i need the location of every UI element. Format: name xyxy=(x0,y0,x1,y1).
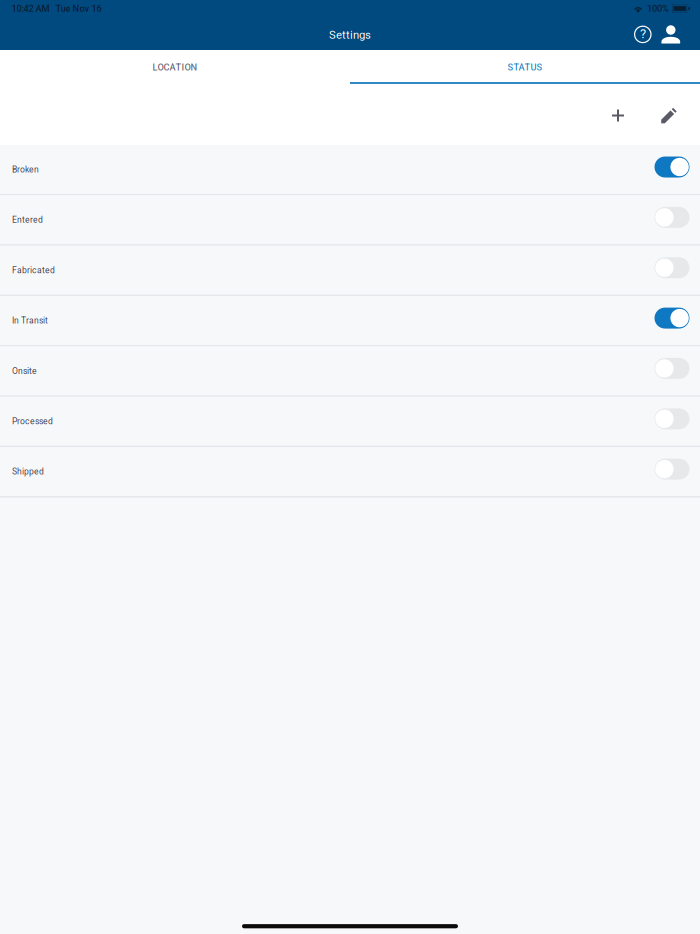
staticText: Broken xyxy=(12,164,39,175)
staticText: ? xyxy=(640,26,646,41)
staticText: LOCATION xyxy=(152,62,197,73)
staticText: Processed xyxy=(12,416,53,426)
staticText: Settings xyxy=(329,28,371,42)
button[interactable]: Broken xyxy=(0,145,700,195)
staticText: In Transit xyxy=(12,315,48,326)
button[interactable]: Account xyxy=(657,19,685,49)
button[interactable]: Entered xyxy=(0,195,700,246)
staticText: Entered xyxy=(12,215,43,225)
button[interactable]: In Transit xyxy=(0,296,700,346)
button[interactable]: Onsite xyxy=(0,346,700,397)
button[interactable]: Add xyxy=(603,100,633,130)
button[interactable]: Edit xyxy=(654,100,684,130)
staticText: Fabricated xyxy=(12,265,55,275)
button[interactable]: Shipped xyxy=(0,447,700,498)
staticText: Shipped xyxy=(12,467,44,477)
staticText: 100% xyxy=(647,3,669,14)
button[interactable]: LOCATION xyxy=(0,50,350,84)
staticText: 10:42 AM Tue Nov 16 xyxy=(12,3,102,14)
staticText: Onsite xyxy=(12,366,37,376)
button[interactable]: Processed xyxy=(0,397,700,447)
button[interactable]: Help xyxy=(629,19,657,49)
button[interactable]: STATUS xyxy=(350,50,700,84)
staticText: STATUS xyxy=(507,62,542,73)
button[interactable]: Fabricated xyxy=(0,246,700,296)
